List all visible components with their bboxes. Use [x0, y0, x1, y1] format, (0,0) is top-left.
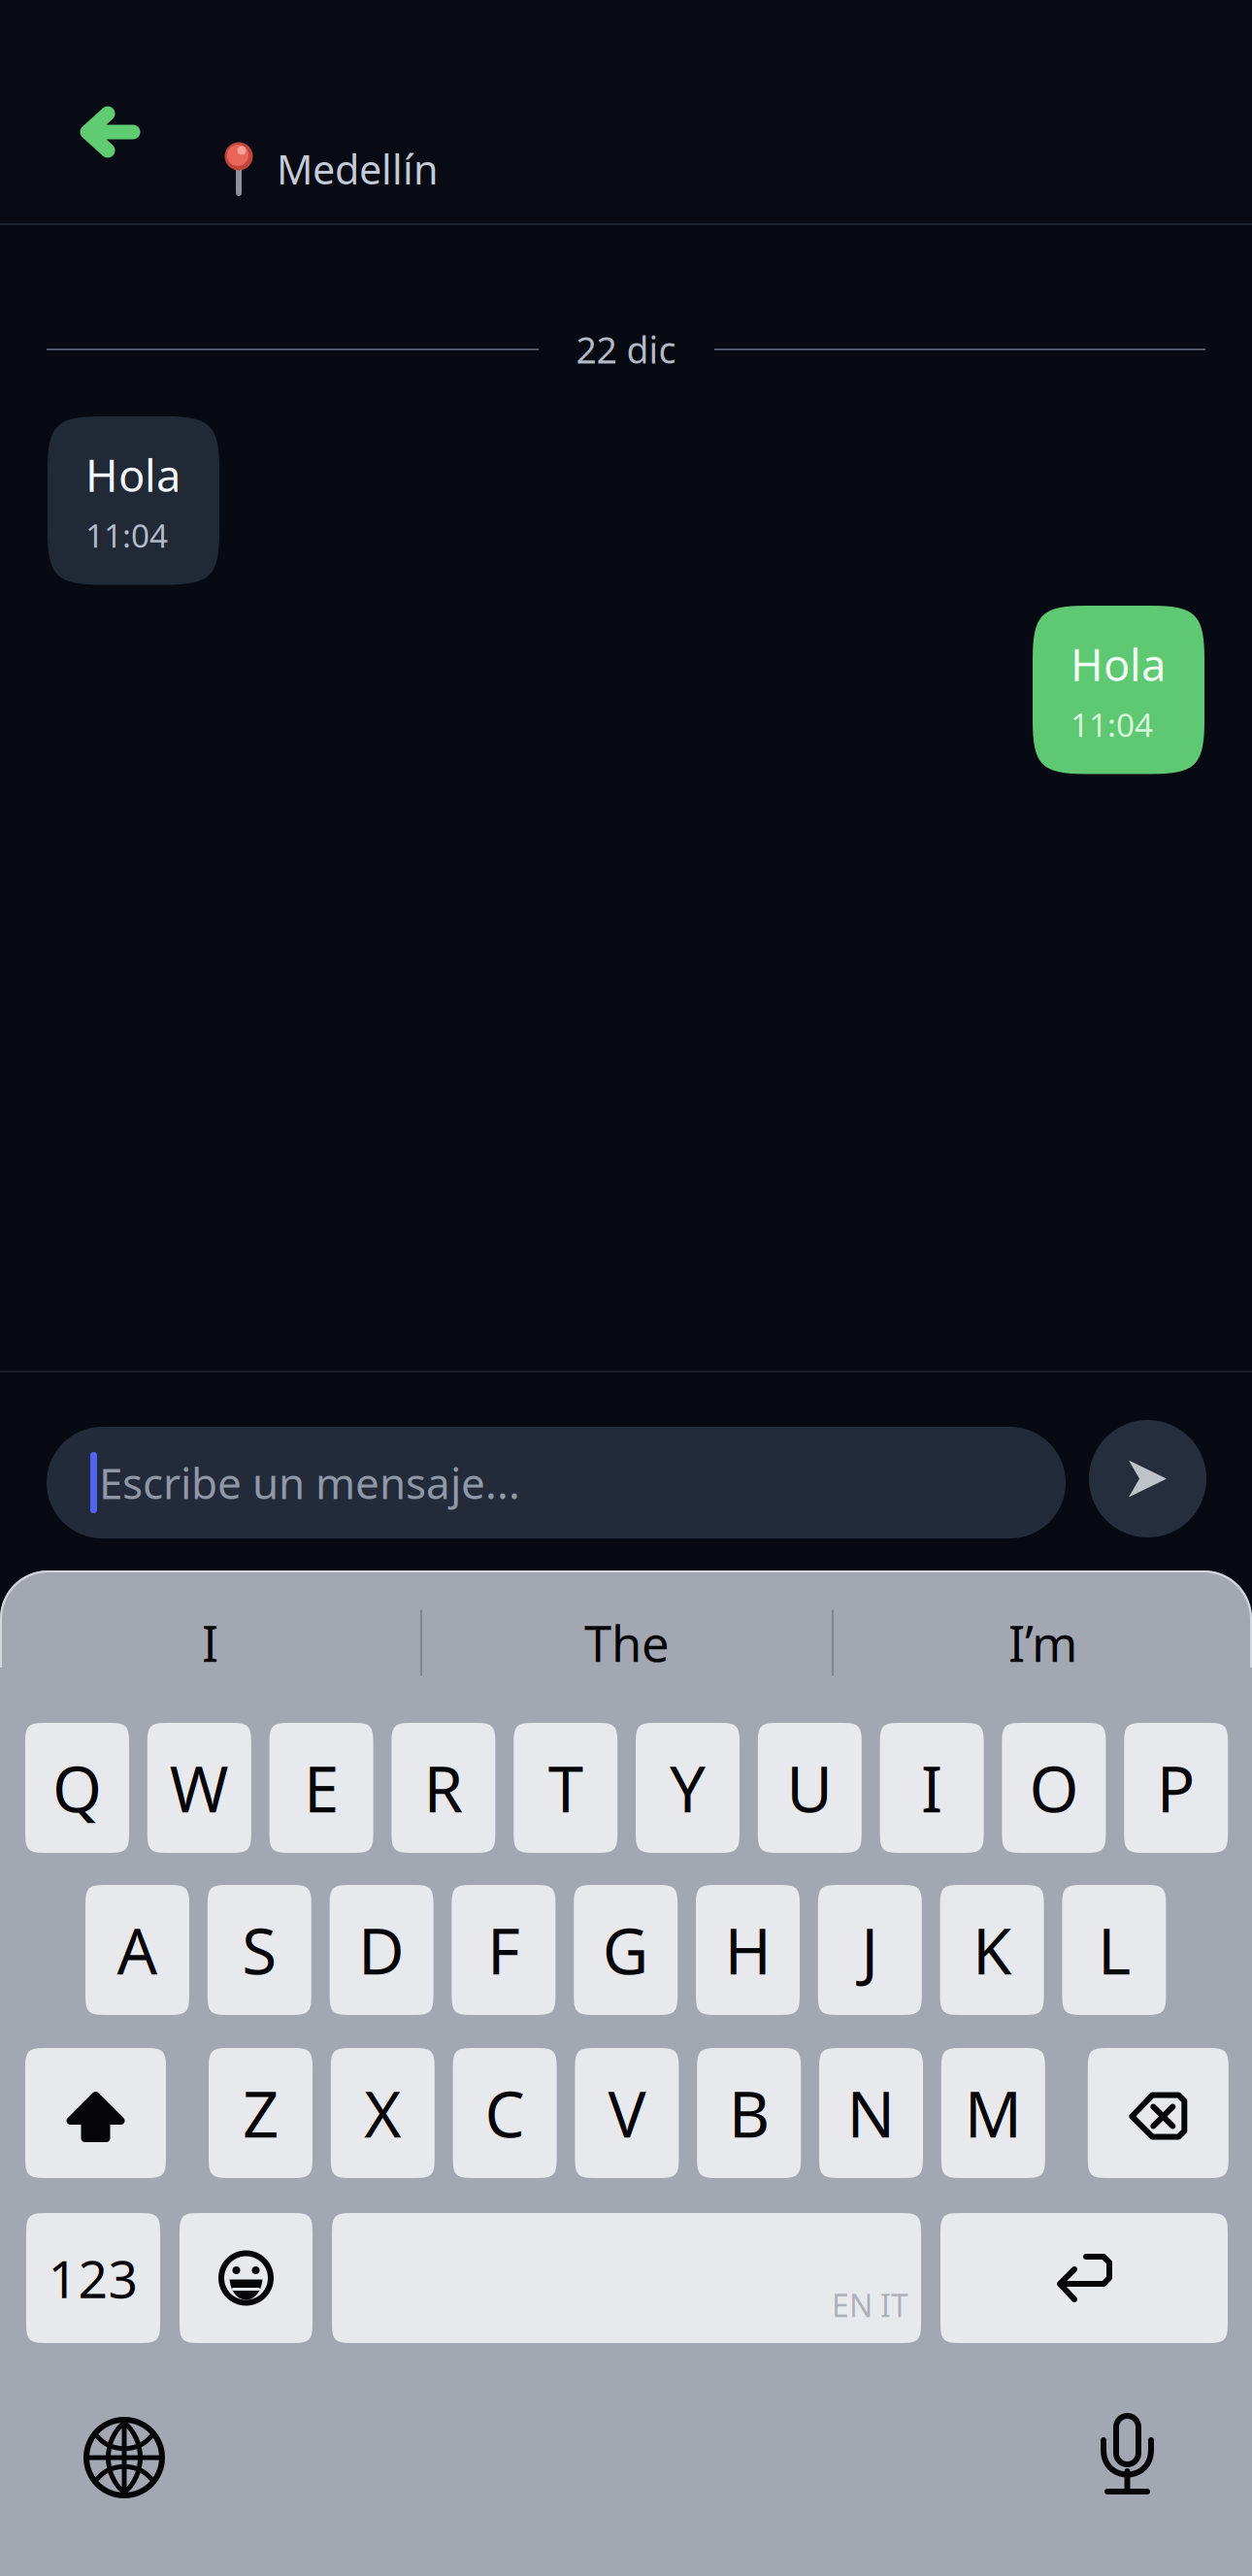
staticText: 11:04	[1071, 703, 1153, 746]
staticText: Q	[52, 1746, 102, 1830]
staticText: D	[358, 1908, 405, 1992]
button[interactable]: P	[1124, 1723, 1228, 1853]
staticText: The	[584, 1610, 670, 1675]
staticText: P	[1157, 1746, 1195, 1830]
staticText: EN IT	[832, 2284, 908, 2326]
staticText: C	[485, 2071, 525, 2155]
staticText: T	[548, 1746, 583, 1830]
staticText: S	[242, 1908, 277, 1992]
button[interactable]: Delete	[1088, 2048, 1229, 2178]
button[interactable]: L	[1062, 1885, 1166, 2015]
staticText: B	[729, 2071, 769, 2155]
button[interactable]: W	[147, 1723, 251, 1853]
staticText: I’m	[1008, 1610, 1077, 1675]
button[interactable]: The	[422, 1570, 832, 1715]
staticText: Y	[670, 1746, 706, 1830]
button[interactable]: A	[85, 1885, 189, 2015]
staticText: 11:04	[85, 514, 168, 557]
staticText: Escribe un mensaje...	[99, 1454, 520, 1511]
button[interactable]: M	[941, 2048, 1045, 2178]
button[interactable]: Emoji	[180, 2213, 313, 2343]
button[interactable]: F	[452, 1885, 556, 2015]
staticText: R	[424, 1746, 463, 1830]
staticText: F	[487, 1908, 520, 1992]
button[interactable]: Return	[940, 2213, 1228, 2343]
staticText: W	[170, 1746, 229, 1830]
button[interactable]: C	[453, 2048, 557, 2178]
button[interactable]: Y	[636, 1723, 740, 1853]
button[interactable]: I’m	[834, 1570, 1252, 1715]
button[interactable]: O	[1002, 1723, 1106, 1853]
button[interactable]: H	[696, 1885, 800, 2015]
staticText: I	[921, 1746, 942, 1830]
staticText: I	[202, 1610, 218, 1675]
button[interactable]: Back	[49, 70, 170, 194]
staticText: 123	[48, 2244, 138, 2312]
button[interactable]: G	[574, 1885, 678, 2015]
staticText: E	[304, 1746, 339, 1830]
staticText: A	[117, 1908, 158, 1992]
staticText: N	[847, 2071, 895, 2155]
button[interactable]: I	[880, 1723, 984, 1853]
staticText: Hola	[85, 446, 181, 504]
button[interactable]: B	[697, 2048, 801, 2178]
button[interactable]: X	[331, 2048, 435, 2178]
button[interactable]: K	[940, 1885, 1044, 2015]
button[interactable]: U	[758, 1723, 862, 1853]
button[interactable]: V	[575, 2048, 679, 2178]
button[interactable]: D	[330, 1885, 433, 2015]
staticText: V	[608, 2071, 646, 2155]
button[interactable]: R	[392, 1723, 495, 1853]
button[interactable]: Shift	[25, 2048, 166, 2178]
staticText: K	[973, 1908, 1011, 1992]
button[interactable]: 123	[26, 2213, 160, 2343]
button[interactable]: T	[514, 1723, 617, 1853]
staticText: O	[1029, 1746, 1079, 1830]
button[interactable]: S	[208, 1885, 311, 2015]
staticText: Z	[243, 2071, 279, 2155]
button[interactable]: Q	[25, 1723, 129, 1853]
button[interactable]: J	[818, 1885, 922, 2015]
button[interactable]: N	[819, 2048, 923, 2178]
button[interactable]: Next keyboard	[86, 2420, 162, 2495]
staticText: U	[786, 1746, 833, 1830]
staticText: L	[1098, 1908, 1131, 1992]
button[interactable]: E	[269, 1723, 373, 1853]
button[interactable]: Dictate	[1101, 2415, 1154, 2496]
staticText: M	[965, 2071, 1022, 2155]
staticText: Medellín	[277, 142, 439, 196]
button[interactable]: Z	[209, 2048, 313, 2178]
staticText: J	[861, 1908, 879, 1992]
staticText: Hola	[1071, 635, 1166, 693]
staticText: H	[725, 1908, 771, 1992]
button[interactable]: I	[0, 1570, 420, 1715]
staticText: 22 dic	[576, 325, 676, 373]
button[interactable]: Send	[1089, 1420, 1206, 1537]
staticText: G	[602, 1908, 649, 1992]
staticText: X	[364, 2071, 401, 2155]
button[interactable]: Space	[332, 2213, 921, 2343]
button[interactable]: Medellín	[220, 107, 439, 231]
